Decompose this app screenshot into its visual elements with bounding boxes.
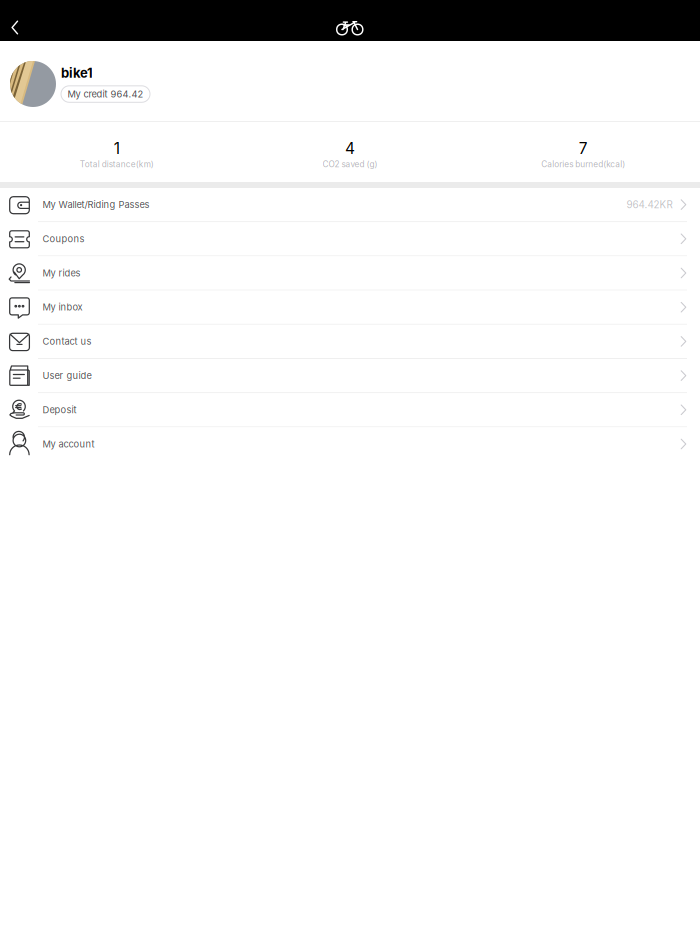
button[interactable]: My account <box>0 427 700 461</box>
staticText: My credit 964.42 <box>67 88 143 100</box>
staticText: My rides <box>42 267 80 279</box>
staticText: 7 <box>579 139 588 158</box>
button[interactable]: My inbox <box>0 291 700 325</box>
button[interactable]: Deposit <box>0 393 700 427</box>
staticText: Deposit <box>42 404 76 415</box>
staticText: User guide <box>42 370 91 381</box>
staticText: 964.42KR <box>626 199 672 210</box>
button[interactable]: Back <box>0 0 34 41</box>
button[interactable]: Contact us <box>0 325 700 359</box>
button[interactable]: Coupons <box>0 222 700 256</box>
staticText: Total distance(km) <box>80 159 154 169</box>
staticText: My inbox <box>42 302 82 313</box>
staticText: Coupons <box>42 233 84 244</box>
staticText: Calories burned(kcal) <box>541 159 625 169</box>
staticText: Contact us <box>42 336 91 347</box>
staticText: CO2 saved (g) <box>322 159 377 169</box>
button[interactable]: User guide <box>0 359 700 393</box>
button[interactable]: My rides <box>0 256 700 291</box>
staticText: 1 <box>114 139 120 158</box>
staticText: My Wallet/Riding Passes <box>42 199 149 210</box>
staticText: bike1 <box>61 65 93 81</box>
staticText: My account <box>42 438 94 450</box>
staticText: 4 <box>345 139 355 158</box>
button[interactable]: My Wallet/Riding Passes <box>0 188 700 222</box>
